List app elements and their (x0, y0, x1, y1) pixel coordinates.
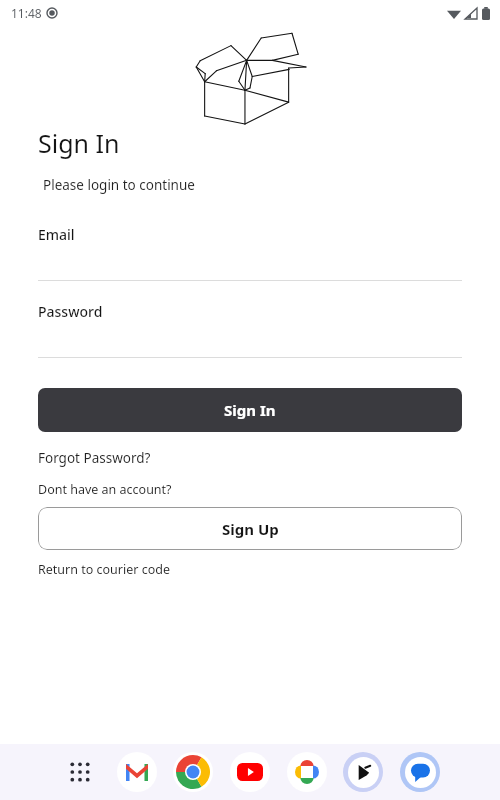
staticText: Please login to continue (43, 176, 195, 194)
button[interactable]: Chrome (173, 752, 213, 792)
staticText: Return to courier code (38, 561, 170, 578)
staticText: Password (38, 302, 103, 321)
staticText: Email (38, 225, 75, 244)
button[interactable]: App (400, 752, 440, 792)
button[interactable]: Dont have an account? (38, 481, 172, 498)
staticText: Dont have an account? (38, 481, 172, 498)
staticText: 11:48 (11, 5, 42, 21)
button[interactable]: App (343, 752, 383, 792)
staticText: Sign In (38, 126, 120, 160)
button[interactable]: Forgot Password? (38, 449, 151, 467)
button[interactable]: All apps (60, 752, 100, 792)
button[interactable]: Photos (287, 752, 327, 792)
button[interactable]: Sign Up (38, 507, 462, 550)
button[interactable]: YouTube (230, 752, 270, 792)
button[interactable]: Return to courier code (38, 561, 170, 578)
button[interactable]: Gmail (117, 752, 157, 792)
staticText: Forgot Password? (38, 449, 151, 467)
button[interactable]: Sign In (38, 388, 462, 432)
staticText: Sign In (224, 400, 276, 420)
staticText: Sign Up (222, 519, 279, 539)
